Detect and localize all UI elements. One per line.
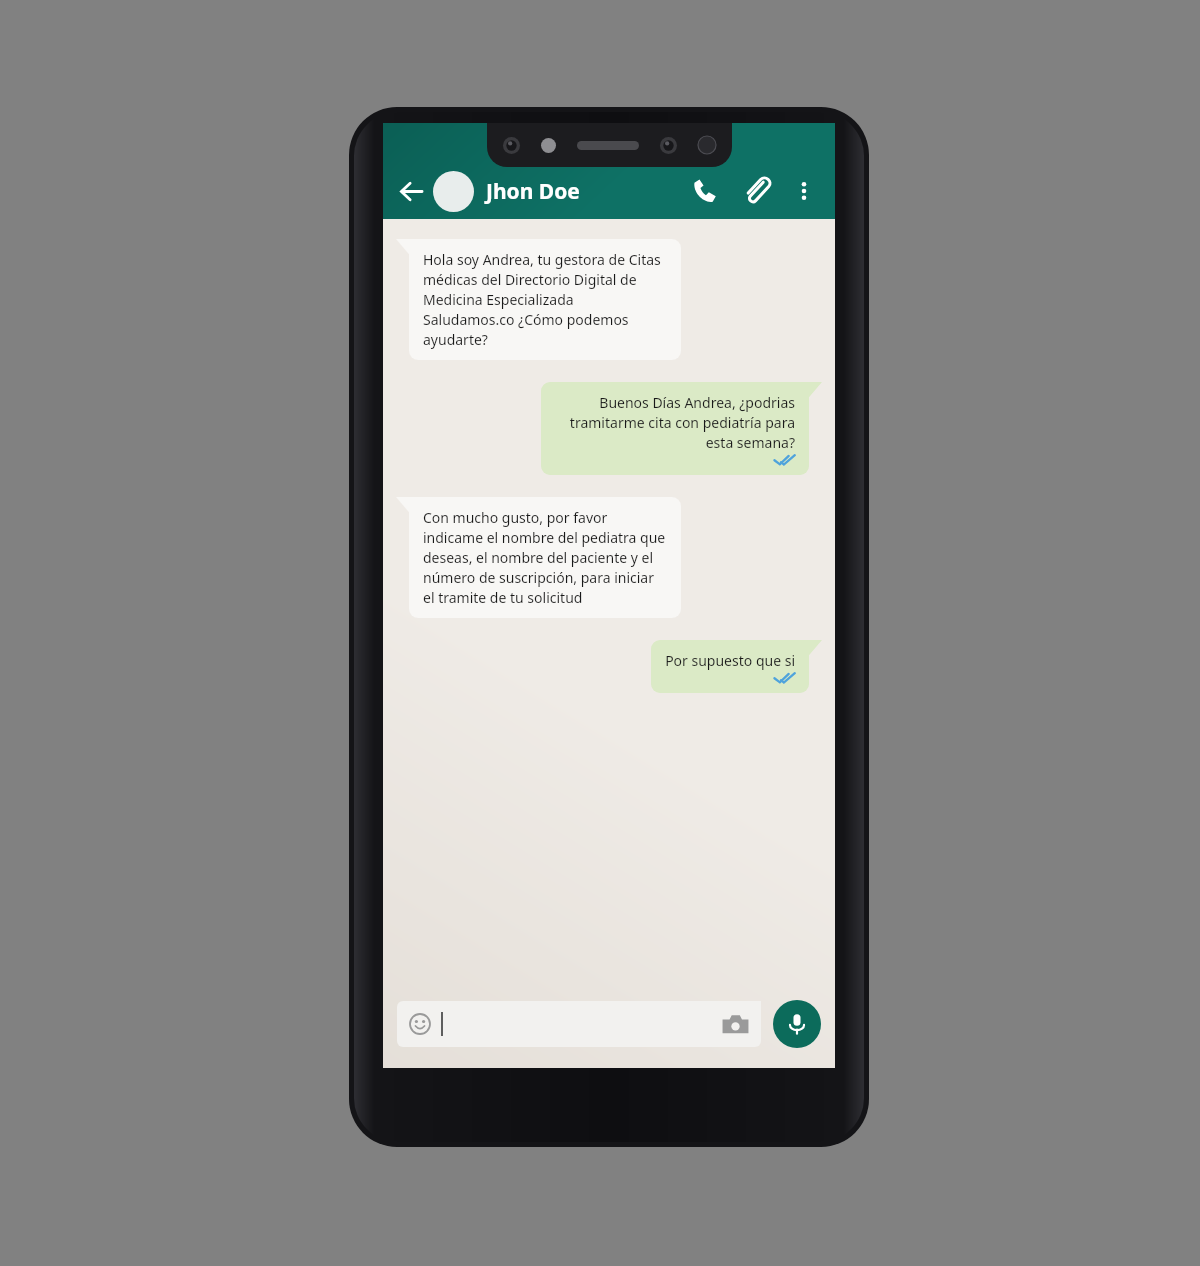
other: Camera — [722, 1014, 749, 1034]
button[interactable]: More options — [787, 174, 821, 208]
other: Emoji — [409, 1013, 431, 1035]
staticText: Con mucho gusto, por favor indicame el n… — [423, 508, 667, 607]
button[interactable]: Jhon Doe — [486, 177, 580, 206]
button[interactable]: Call — [685, 171, 725, 211]
staticText: Hola soy Andrea, tu gestora de Citas méd… — [423, 250, 667, 349]
button[interactable]: Profile photo — [433, 171, 474, 212]
button[interactable]: Con mucho gusto, por favor indicame el n… — [409, 497, 681, 618]
staticText: Buenos Días Andrea, ¿podrias tramitarme … — [555, 393, 795, 452]
button[interactable]: Buenos Días Andrea, ¿podrias tramitarme … — [541, 382, 809, 475]
staticText: Por supuesto que si — [665, 651, 795, 670]
button[interactable]: Por supuesto que si — [651, 640, 809, 693]
button[interactable]: Voice message — [773, 1000, 821, 1048]
button[interactable]: Emoji — [397, 1001, 761, 1047]
button[interactable]: Hola soy Andrea, tu gestora de Citas méd… — [409, 239, 681, 360]
button[interactable]: Back — [391, 171, 431, 211]
button[interactable]: Attach — [737, 171, 777, 211]
